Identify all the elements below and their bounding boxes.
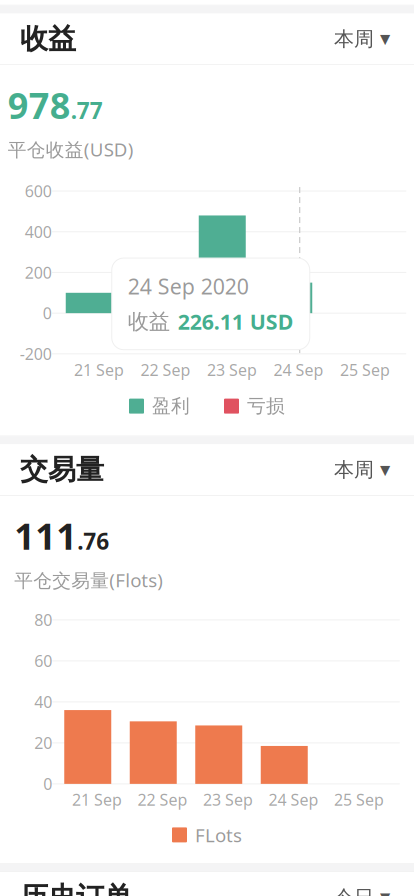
staticText: ▼ — [380, 462, 390, 477]
staticText: 交易量 — [20, 453, 104, 487]
button[interactable]: 本周 — [330, 449, 394, 490]
staticText: 60 — [34, 650, 52, 671]
button[interactable]: 今日 — [330, 877, 394, 896]
staticText: 111 — [14, 512, 77, 560]
staticText: ▼ — [380, 890, 390, 896]
staticText: 平仓交易量(Flots) — [14, 568, 163, 592]
button[interactable]: 本周 — [330, 19, 394, 59]
staticText: 24 Sep 2020 — [128, 272, 249, 300]
staticText: 600 — [25, 180, 52, 202]
staticText: 200 — [25, 262, 52, 283]
staticText: 400 — [25, 221, 52, 242]
staticText: 25 Sep — [340, 359, 390, 380]
staticText: .76 — [77, 526, 109, 556]
staticText: 盈利 — [152, 395, 190, 418]
staticText: 本周 — [334, 27, 374, 51]
staticText: FLots — [195, 822, 242, 847]
staticText: 历史订单 — [20, 880, 132, 896]
staticText: 收益 — [128, 308, 170, 335]
staticText: 20 — [34, 732, 52, 753]
staticText: 978 — [8, 81, 71, 129]
staticText: 收益 — [20, 22, 76, 56]
staticText: 40 — [34, 691, 52, 712]
staticText: 21 Sep — [72, 789, 122, 810]
staticText: 24 Sep — [268, 789, 318, 810]
staticText: 21 Sep — [74, 359, 124, 380]
staticText: 亏损 — [247, 395, 285, 418]
staticText: 0 — [43, 773, 52, 794]
staticText: 本周 — [334, 457, 374, 482]
staticText: 平仓收益(USD) — [8, 137, 134, 162]
staticText: 23 Sep — [203, 789, 253, 810]
staticText: ▼ — [380, 31, 390, 46]
staticText: 今日 — [334, 885, 374, 896]
staticText: 23 Sep — [207, 359, 257, 380]
staticText: 22 Sep — [140, 359, 190, 380]
staticText: 24 Sep — [273, 359, 323, 380]
staticText: 22 Sep — [137, 789, 187, 810]
staticText: 25 Sep — [334, 789, 384, 810]
staticText: 226.11 USD — [178, 307, 294, 336]
staticText: 80 — [34, 609, 52, 630]
staticText: .77 — [71, 95, 103, 125]
staticText: -200 — [20, 343, 52, 364]
staticText: 0 — [43, 302, 52, 324]
staticText: ‹ — [29, 0, 41, 6]
